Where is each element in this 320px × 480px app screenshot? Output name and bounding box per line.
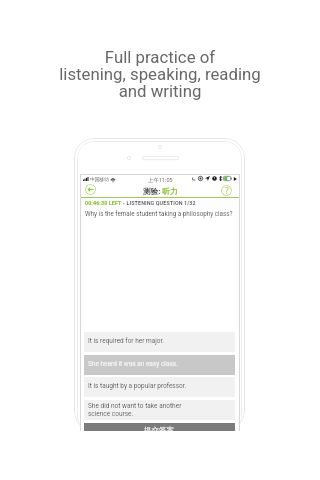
staticText: It is required for her major. bbox=[88, 337, 165, 345]
staticText: ? bbox=[225, 185, 229, 196]
staticText: 提交答案 bbox=[144, 426, 175, 431]
button[interactable]: It is required for her major. bbox=[84, 332, 235, 352]
staticText: Full practice of listening, speaking, re… bbox=[59, 47, 261, 101]
button[interactable]: It is taught by a popular professor. bbox=[84, 377, 235, 397]
staticText: 上午11:05 bbox=[148, 176, 173, 183]
button[interactable]: 提交答案 bbox=[84, 423, 235, 431]
staticText: 00:46:30 LEFT - LISTENING QUESTION 1/32 bbox=[85, 200, 196, 206]
staticText: She did not want to take another science… bbox=[88, 402, 182, 418]
button[interactable]: Back bbox=[85, 184, 96, 195]
button[interactable]: Help bbox=[221, 185, 232, 196]
staticText: It is taught by a popular professor. bbox=[88, 382, 187, 390]
button[interactable]: She heard it was an easy class. bbox=[84, 355, 235, 375]
button[interactable]: She did not want to take another science… bbox=[84, 400, 235, 420]
staticText: 中国移动 bbox=[90, 176, 109, 182]
staticText: She heard it was an easy class. bbox=[88, 360, 178, 368]
staticText: 测验: 听力 bbox=[143, 186, 178, 196]
staticText: Why is the female student taking a philo… bbox=[85, 210, 233, 217]
